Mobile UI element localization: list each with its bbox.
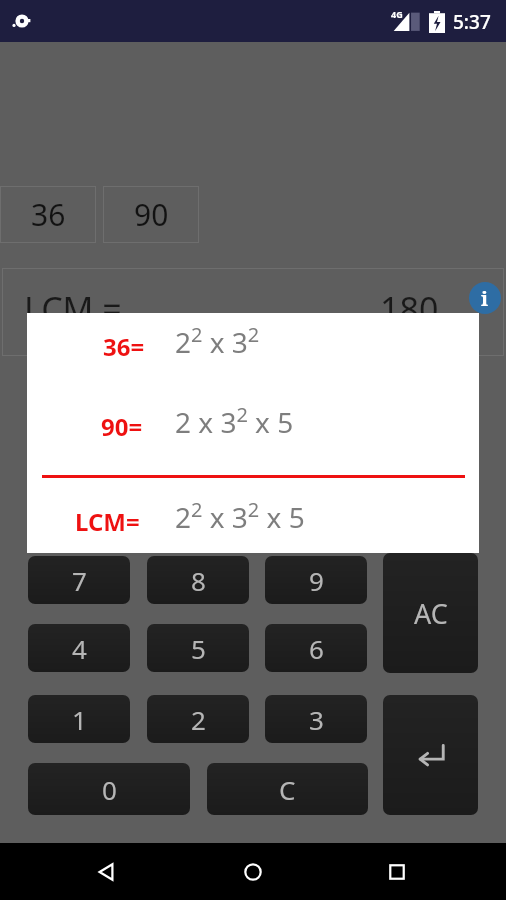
button[interactable]: 8 (147, 556, 249, 604)
staticText: 8 (191, 563, 206, 598)
staticText: C (279, 772, 296, 807)
staticText: 9 (309, 563, 324, 598)
staticText: 36 (31, 194, 66, 235)
button[interactable]: Info (469, 282, 501, 314)
staticText: 22 x 32 (175, 321, 260, 361)
button[interactable]: Recents (381, 856, 413, 888)
button[interactable]: Enter (383, 695, 478, 815)
staticText: 90 (134, 194, 169, 235)
button[interactable]: Home (237, 856, 269, 888)
button[interactable]: 7 (28, 556, 130, 604)
staticText: LCM = (24, 286, 122, 332)
button[interactable]: AC (383, 553, 478, 673)
button[interactable]: 5 (147, 624, 249, 672)
button[interactable]: Back (90, 856, 122, 888)
staticText: 2 (191, 702, 206, 737)
staticText: 0 (102, 772, 117, 807)
staticText: LCM= (75, 505, 140, 538)
staticText: 1 (72, 702, 87, 737)
staticText: AC (414, 595, 448, 632)
staticText: 22 x 32 x 5 (175, 496, 305, 536)
button[interactable]: 3 (265, 695, 367, 743)
staticText: 2 x 32 x 5 (175, 401, 294, 441)
staticText: 180 (380, 286, 439, 332)
staticText: 3 (309, 702, 324, 737)
button[interactable]: 4 (28, 624, 130, 672)
button[interactable]: 6 (265, 624, 367, 672)
staticText: 5:37 (453, 9, 491, 35)
button[interactable]: 1 (28, 695, 130, 743)
button[interactable]: C (207, 763, 368, 815)
staticText: 4G (391, 8, 403, 20)
button[interactable]: 2 (147, 695, 249, 743)
staticText: i (481, 285, 489, 312)
staticText: 36= (103, 330, 145, 363)
button[interactable]: 0 (28, 763, 190, 815)
staticText: 7 (72, 563, 87, 598)
staticText: 4 (72, 631, 87, 666)
button[interactable]: 9 (265, 556, 367, 604)
staticText: 90= (101, 410, 143, 443)
staticText: 6 (309, 631, 324, 666)
button[interactable]: 36 (0, 186, 96, 243)
button[interactable]: 90 (103, 186, 199, 243)
staticText: 5 (191, 631, 206, 666)
